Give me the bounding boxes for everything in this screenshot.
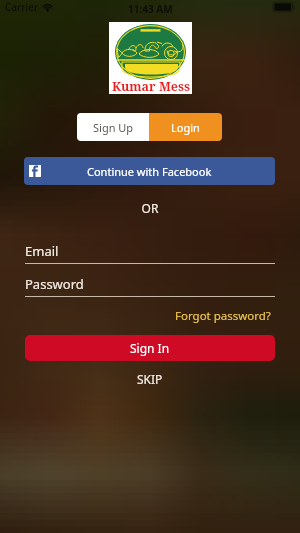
staticText: Sign Up	[93, 120, 134, 135]
staticText: Continue with Facebook	[87, 164, 212, 179]
staticText: Carrier	[5, 0, 39, 14]
staticText: 11:43 AM	[128, 2, 173, 16]
button[interactable]: Continue with Facebook	[24, 157, 275, 185]
button[interactable]: Login	[149, 113, 222, 141]
staticText: Kumar Mess	[112, 78, 190, 95]
button[interactable]: Sign In	[25, 335, 275, 361]
button[interactable]: Forgot password?	[173, 306, 273, 326]
button[interactable]: Password	[25, 275, 275, 297]
staticText: SKIP	[137, 371, 163, 387]
staticText: Email	[25, 242, 59, 260]
staticText: Sign In	[130, 340, 170, 356]
staticText: OR	[0, 200, 300, 216]
button[interactable]: SKIP	[125, 369, 175, 389]
button[interactable]: Sign Up	[77, 113, 149, 141]
button[interactable]: Email	[25, 242, 275, 264]
staticText: Forgot password?	[175, 308, 271, 324]
staticText: Login	[171, 120, 200, 135]
staticText: Password	[25, 275, 84, 293]
